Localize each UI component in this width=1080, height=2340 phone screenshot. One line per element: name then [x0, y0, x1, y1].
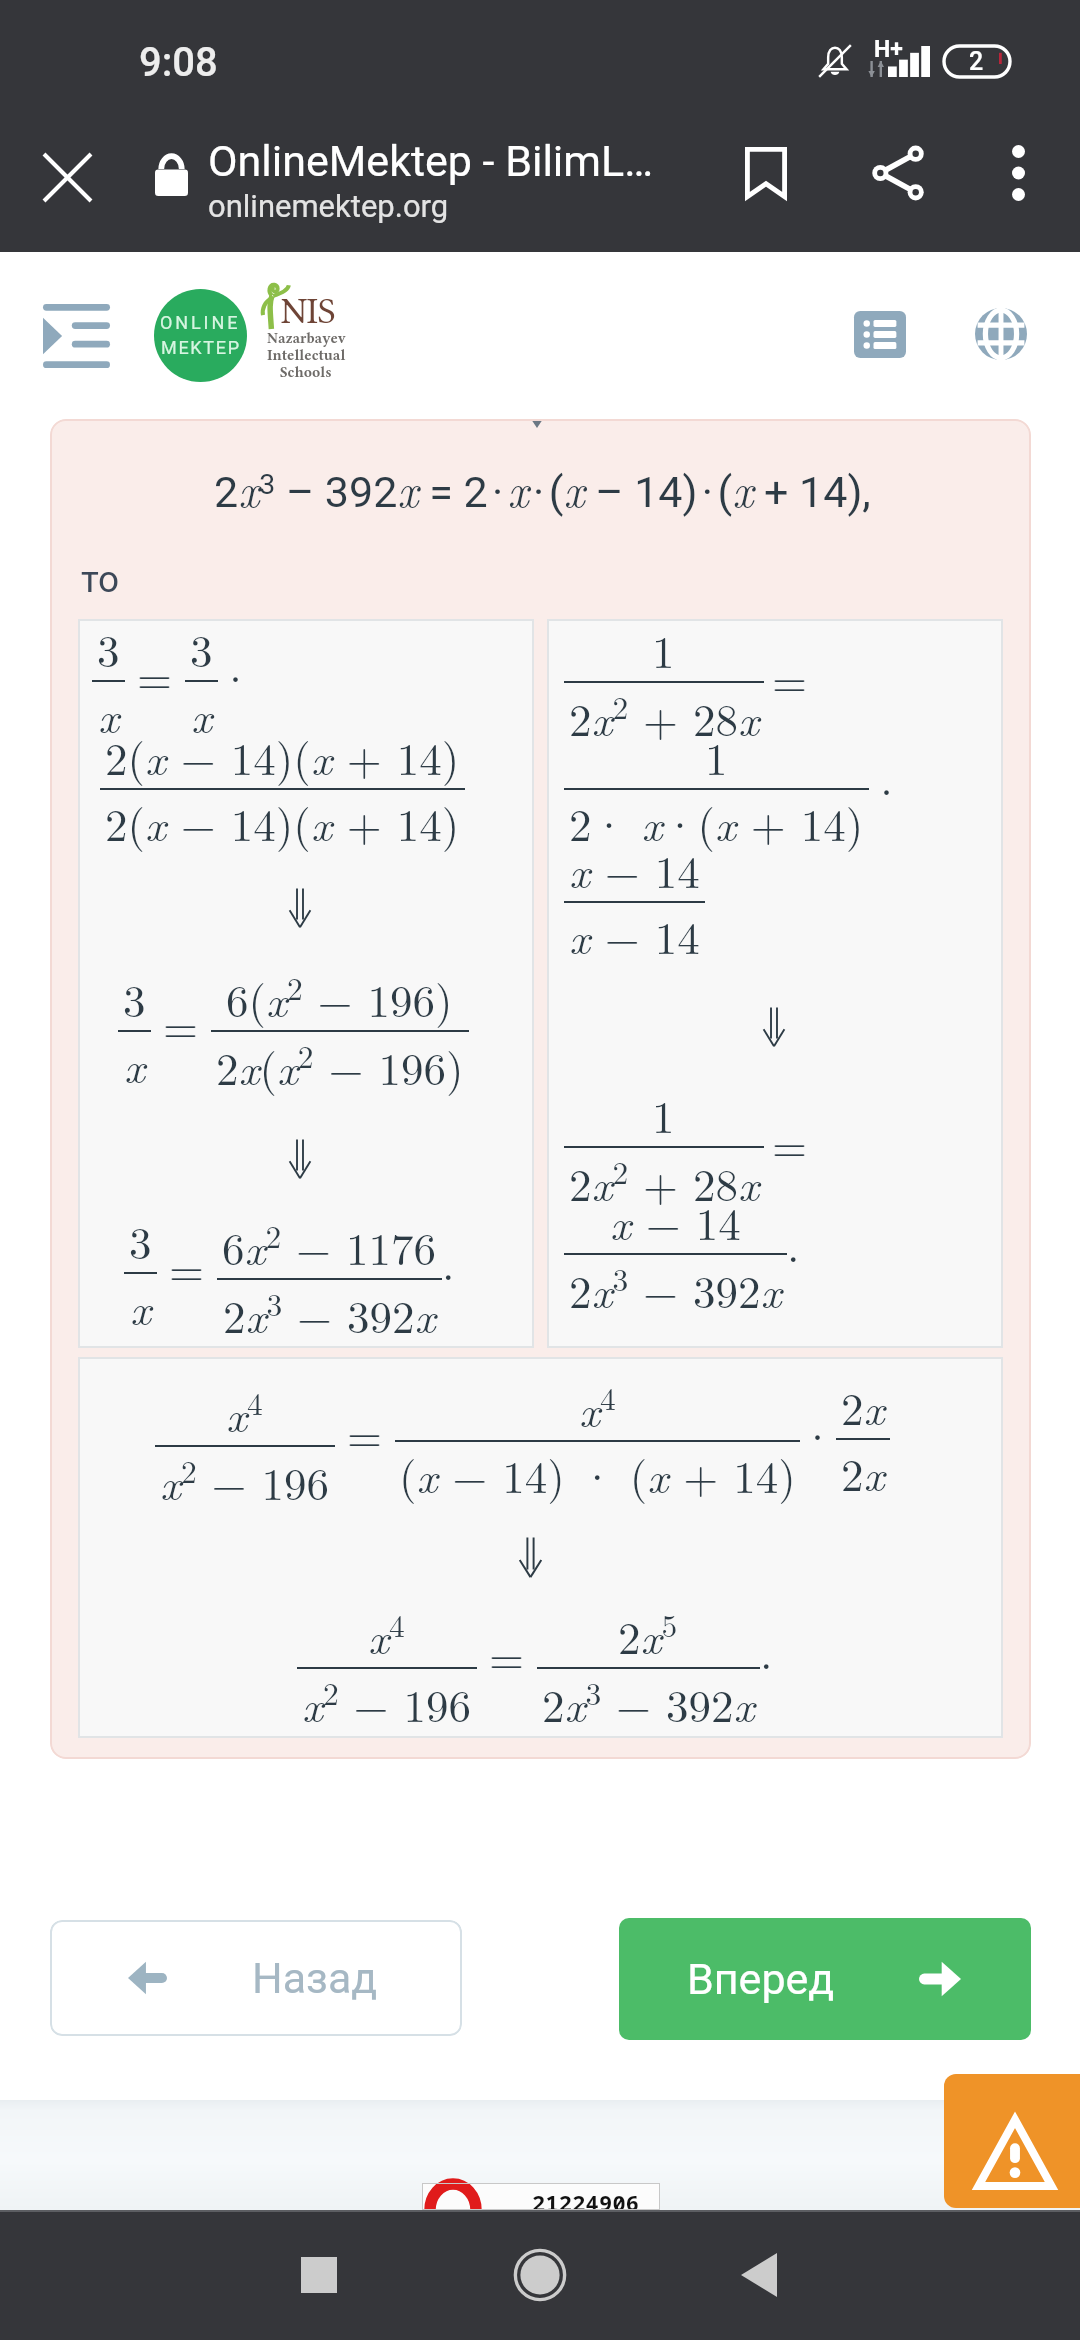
button[interactable]: Вперед: [619, 1918, 1031, 2040]
staticText: 2x2 + 28x: [569, 683, 759, 749]
staticText: 2x3 − 392x: [223, 1280, 436, 1346]
staticText: 6(x2 − 196): [226, 964, 453, 1030]
staticText: =: [489, 1623, 525, 1687]
staticText: .: [442, 1229, 455, 1293]
staticText: x: [124, 1032, 145, 1096]
staticText: x: [130, 1274, 151, 1338]
staticText: Назад: [252, 1953, 378, 2003]
staticText: =: [137, 643, 173, 707]
staticText: H+: [874, 36, 903, 63]
button[interactable]: Home: [493, 2228, 587, 2322]
staticText: 6x2 − 1176: [222, 1212, 437, 1278]
staticText: 1: [652, 617, 675, 681]
staticText: x − 14: [569, 903, 700, 967]
button[interactable]: Report a problem: [944, 2074, 1080, 2208]
button[interactable]: Close: [21, 131, 113, 223]
staticText: 3: [123, 966, 146, 1030]
button[interactable]: Назад: [50, 1920, 462, 2036]
staticText: .: [760, 1618, 773, 1682]
button[interactable]: Contents: [833, 287, 927, 381]
staticText: 1: [705, 724, 728, 788]
staticText: 2x(x2 − 196): [216, 1032, 464, 1098]
staticText: 3: [129, 1208, 152, 1272]
staticText: x: [191, 682, 212, 746]
staticText: 2x5: [618, 1601, 678, 1667]
staticText: 3: [190, 616, 213, 680]
staticText: 2x: [841, 1440, 885, 1504]
staticText: 2(x − 14)(x + 14): [105, 724, 460, 788]
staticText: 21224906: [532, 2187, 640, 2214]
button[interactable]: Back: [712, 2228, 806, 2322]
staticText: ·: [218, 644, 254, 708]
staticText: onlinemektep.org: [208, 188, 449, 224]
staticText: Schools: [280, 364, 332, 381]
staticText: 2x: [841, 1374, 885, 1438]
staticText: 1: [652, 1082, 675, 1146]
staticText: (x − 14) · (x + 14): [399, 1442, 796, 1506]
staticText: x − 14: [569, 837, 700, 901]
button[interactable]: Language: [954, 287, 1048, 381]
staticText: ·: [869, 757, 905, 821]
staticText: NIS: [281, 290, 336, 332]
staticText: 3: [97, 616, 120, 680]
staticText: 2x3 − 392x: [569, 1255, 782, 1321]
staticText: =: [772, 1111, 808, 1175]
staticText: x2 − 196: [302, 1669, 472, 1735]
staticText: x2 − 196: [160, 1447, 330, 1513]
staticText: x: [98, 682, 119, 746]
button[interactable]: Share: [851, 126, 945, 220]
staticText: Nazarbayev: [267, 330, 346, 347]
staticText: Intellectual: [267, 347, 346, 364]
button[interactable]: Collapse menu: [29, 287, 124, 385]
staticText: MEKTEP: [161, 337, 241, 358]
staticText: OnlineMektep - BilimL…: [208, 136, 653, 186]
staticText: =: [772, 646, 808, 710]
staticText: Вперед: [687, 1954, 835, 2004]
staticText: =: [169, 1235, 205, 1299]
staticText: x − 14: [610, 1189, 741, 1253]
staticText: 2· x·(x + 14): [569, 790, 864, 854]
staticText: 2x3 – 392x = 2 · x · (x – 14) · (x + 14)…: [214, 456, 871, 520]
staticText: x4: [579, 1374, 616, 1440]
button[interactable]: More options: [971, 126, 1065, 220]
staticText: =: [347, 1401, 383, 1465]
staticText: 9:08: [139, 39, 218, 86]
staticText: x4: [368, 1601, 405, 1667]
staticText: 2(x − 14)(x + 14): [105, 790, 460, 854]
staticText: =: [163, 992, 199, 1056]
staticText: 2x3 − 392x: [542, 1669, 755, 1735]
staticText: 2x2 + 28x: [569, 1148, 759, 1214]
staticText: x4: [226, 1379, 263, 1445]
staticText: ONLINE: [160, 312, 241, 333]
staticText: 2: [969, 47, 984, 76]
button[interactable]: Bookmark: [719, 126, 813, 220]
staticText: то: [81, 558, 120, 601]
button[interactable]: Recent apps: [272, 2228, 366, 2322]
staticText: ·: [800, 1402, 836, 1466]
staticText: .: [787, 1211, 800, 1275]
